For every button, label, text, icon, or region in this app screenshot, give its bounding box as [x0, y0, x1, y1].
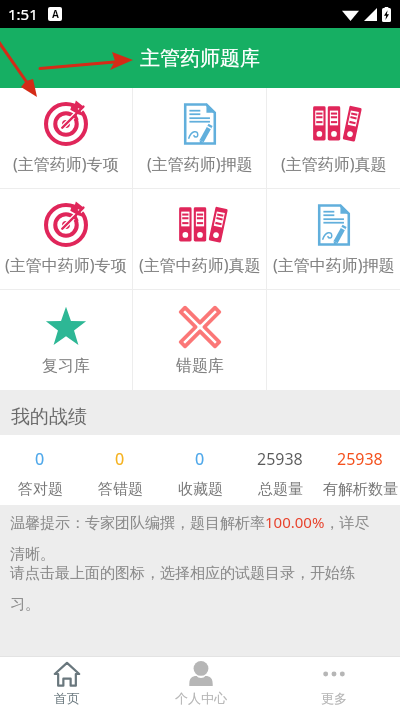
staticText: (主管药师)押题: [147, 153, 253, 175]
staticText: 我的战绩: [11, 405, 87, 429]
staticText: 答对题: [18, 480, 63, 499]
staticText: (主管药师)专项: [13, 153, 119, 175]
staticText: 有解析数量: [323, 480, 398, 499]
staticText: 0: [195, 448, 205, 470]
button[interactable]: 首页: [0, 657, 134, 710]
staticText: 更多: [321, 690, 347, 706]
staticText: 收藏题: [178, 480, 223, 499]
staticText: 25938: [337, 448, 383, 470]
staticText: 首页: [54, 690, 80, 706]
button[interactable]: 错题库: [133, 290, 266, 390]
button[interactable]: (主管中药师)专项: [0, 189, 132, 289]
staticText: 0: [115, 448, 125, 470]
button[interactable]: (主管药师)专项: [0, 88, 132, 188]
button[interactable]: 更多: [267, 657, 400, 710]
button[interactable]: 0: [0, 435, 80, 505]
staticText: 复习库: [42, 356, 90, 376]
staticText: 0: [35, 448, 45, 470]
staticText: 答错题: [98, 480, 143, 499]
staticText: A: [52, 7, 59, 21]
button[interactable]: 复习库: [0, 290, 132, 390]
staticText: 个人中心: [175, 690, 227, 706]
staticText: (主管中药师)押题: [273, 254, 395, 276]
staticText: (主管中药师)专项: [5, 254, 127, 276]
staticText: 25938: [257, 448, 303, 470]
staticText: 1:51: [8, 4, 38, 24]
button[interactable]: (主管中药师)真题: [133, 189, 266, 289]
button[interactable]: 25938: [320, 435, 400, 505]
button[interactable]: 25938: [240, 435, 320, 505]
staticText: 温馨提示：专家团队编撰，题目解析率100.00%，详尽清晰。: [10, 512, 381, 564]
button[interactable]: (主管药师)真题: [267, 88, 400, 188]
button[interactable]: (主管中药师)押题: [267, 189, 400, 289]
staticText: 主管药师题库: [140, 46, 260, 71]
button[interactable]: 0: [160, 435, 240, 505]
button[interactable]: 个人中心: [134, 657, 267, 710]
staticText: (主管药师)真题: [281, 153, 387, 175]
button[interactable]: 0: [80, 435, 160, 505]
staticText: 错题库: [176, 356, 224, 376]
staticText: 总题量: [258, 480, 303, 499]
button[interactable]: (主管药师)押题: [133, 88, 266, 188]
staticText: 请点击最上面的图标，选择相应的试题目录，开始练习。: [10, 564, 381, 614]
staticText: (主管中药师)真题: [139, 254, 261, 276]
